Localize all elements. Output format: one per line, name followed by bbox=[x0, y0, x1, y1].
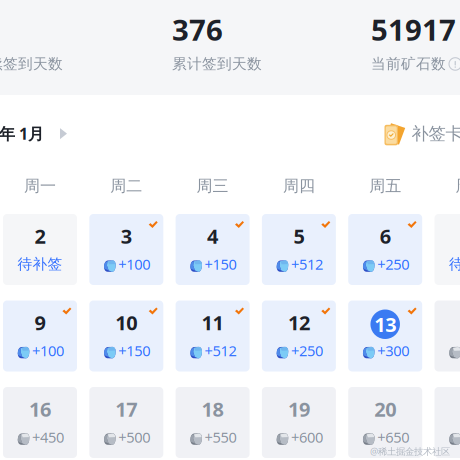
staticText: +512 bbox=[291, 254, 323, 274]
staticText: 待补签 bbox=[17, 255, 62, 273]
staticText: 16 bbox=[29, 396, 51, 422]
button[interactable]: 19 bbox=[262, 387, 336, 458]
staticText: 13 bbox=[374, 311, 396, 338]
staticText: @稀土掘金技术社区 bbox=[370, 445, 450, 457]
staticText: +600 bbox=[291, 427, 323, 447]
button[interactable]: 21 bbox=[434, 387, 460, 458]
button[interactable]: 16 bbox=[3, 387, 77, 458]
button[interactable]: 18 bbox=[176, 387, 250, 458]
staticText: +300 bbox=[377, 341, 409, 360]
staticText: +150 bbox=[205, 254, 237, 274]
staticText: 连续签到天数 bbox=[0, 55, 63, 73]
button[interactable]: 补签卡 bbox=[384, 122, 460, 145]
staticText: +500 bbox=[118, 427, 150, 447]
button[interactable]: 17 bbox=[89, 387, 163, 458]
staticText: 周二 bbox=[110, 176, 142, 196]
staticText: +450 bbox=[32, 427, 64, 447]
staticText: 累计签到天数 bbox=[172, 55, 262, 73]
staticText: 11 bbox=[202, 309, 224, 336]
staticText: +250 bbox=[377, 254, 409, 274]
button[interactable]: 20 bbox=[348, 387, 422, 458]
staticText: 6 bbox=[380, 223, 391, 249]
staticText: 20 bbox=[374, 396, 396, 422]
button[interactable]: 9 bbox=[3, 300, 77, 371]
staticText: 2 bbox=[34, 223, 45, 249]
button[interactable]: 4 bbox=[176, 214, 250, 285]
staticText: 5 bbox=[293, 223, 304, 249]
staticText: +100 bbox=[118, 254, 150, 274]
staticText: 19 bbox=[288, 396, 310, 422]
staticText: 376 bbox=[172, 10, 223, 49]
staticText: +650 bbox=[377, 427, 409, 447]
button[interactable]: 3 bbox=[89, 214, 163, 285]
staticText: 3 bbox=[121, 223, 132, 249]
button[interactable]: 7 bbox=[434, 214, 460, 285]
button[interactable]: 11 bbox=[176, 300, 250, 371]
staticText: +150 bbox=[118, 341, 150, 360]
staticText: 17 bbox=[115, 396, 137, 422]
staticText: 2024年 1月 bbox=[0, 123, 44, 144]
staticText: 周五 bbox=[369, 176, 401, 196]
staticText: 周六 bbox=[455, 176, 460, 196]
staticText: +512 bbox=[205, 341, 237, 360]
staticText: 周三 bbox=[197, 176, 229, 196]
button[interactable]: 6 bbox=[348, 214, 422, 285]
staticText: +100 bbox=[32, 341, 64, 360]
staticText: +550 bbox=[205, 427, 237, 447]
staticText: 9 bbox=[34, 309, 45, 336]
button[interactable]: 13 bbox=[348, 300, 422, 371]
staticText: 周四 bbox=[283, 176, 315, 196]
button[interactable]: 10 bbox=[89, 300, 163, 371]
staticText: 12 bbox=[288, 309, 310, 336]
staticText: 周一 bbox=[24, 176, 56, 196]
staticText: 18 bbox=[202, 396, 224, 422]
button[interactable]: 5 bbox=[262, 214, 336, 285]
staticText: 51917 bbox=[371, 10, 456, 49]
staticText: 待补签 bbox=[449, 255, 460, 273]
staticText: 4 bbox=[207, 223, 218, 249]
staticText: 当前矿石数 bbox=[371, 55, 446, 73]
staticText: 10 bbox=[115, 309, 137, 336]
staticText: +250 bbox=[291, 341, 323, 360]
staticText: 补签卡 bbox=[411, 123, 460, 144]
button[interactable]: 2 bbox=[3, 214, 77, 285]
button[interactable]: 14 bbox=[434, 300, 460, 371]
button[interactable]: 12 bbox=[262, 300, 336, 371]
